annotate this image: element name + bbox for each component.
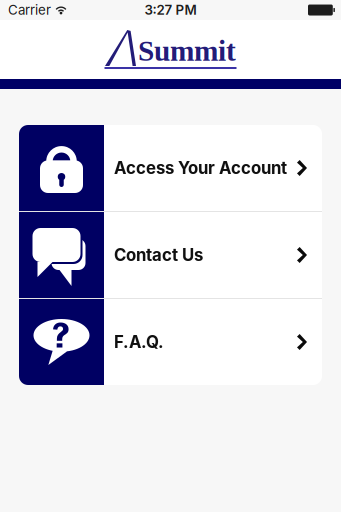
staticText: Contact Us — [114, 245, 203, 265]
staticText: 3:27 PM — [144, 2, 196, 18]
staticText: Summit — [138, 34, 236, 67]
staticText: Access Your Account — [114, 158, 287, 178]
staticText: F.A.Q. — [114, 332, 164, 352]
button[interactable]: Access Your Account — [19, 125, 322, 211]
button[interactable]: Contact Us — [19, 212, 322, 298]
staticText: Carrier — [8, 2, 51, 18]
button[interactable]: F.A.Q. — [19, 299, 322, 385]
